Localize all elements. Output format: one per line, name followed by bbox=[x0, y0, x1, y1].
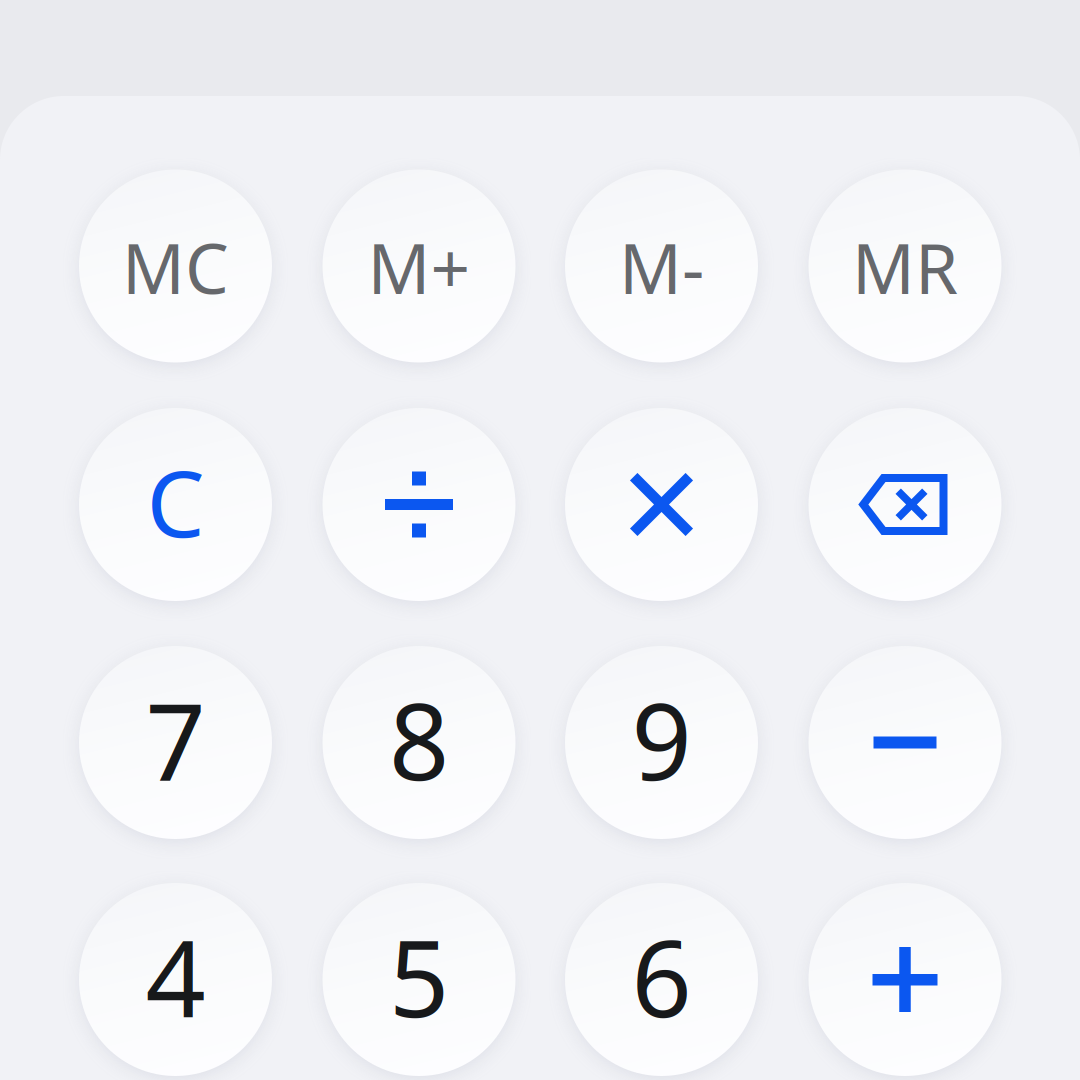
staticText: 7 bbox=[145, 670, 205, 809]
button[interactable]: Plus bbox=[808, 883, 1001, 1076]
staticText: MC bbox=[122, 221, 229, 313]
button[interactable]: 7 bbox=[79, 646, 272, 839]
button[interactable]: C bbox=[79, 408, 272, 601]
staticText: 5 bbox=[389, 907, 449, 1046]
button[interactable]: Delete bbox=[808, 408, 1001, 601]
button[interactable]: 6 bbox=[565, 883, 758, 1076]
button[interactable]: 9 bbox=[565, 646, 758, 839]
staticText: 8 bbox=[389, 670, 449, 809]
staticText: C bbox=[146, 440, 204, 563]
button[interactable]: 5 bbox=[322, 883, 515, 1076]
staticText: 4 bbox=[145, 907, 205, 1046]
button[interactable]: MR bbox=[808, 169, 1001, 362]
button[interactable]: Divide bbox=[322, 408, 515, 601]
staticText: M- bbox=[619, 221, 704, 313]
staticText: M+ bbox=[367, 221, 470, 313]
button[interactable]: M- bbox=[565, 169, 758, 362]
staticText: 6 bbox=[631, 907, 691, 1046]
staticText: 9 bbox=[631, 670, 691, 809]
button[interactable]: Minus bbox=[808, 646, 1001, 839]
button[interactable]: MC bbox=[79, 169, 272, 362]
staticText: MR bbox=[852, 221, 958, 313]
button[interactable]: M+ bbox=[322, 169, 515, 362]
button[interactable]: 4 bbox=[79, 883, 272, 1076]
button[interactable]: Multiply bbox=[565, 408, 758, 601]
button[interactable]: 8 bbox=[322, 646, 515, 839]
